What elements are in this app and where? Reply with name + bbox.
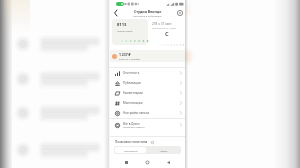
staticText: Отчетность: [123, 71, 140, 75]
button[interactable]: Settings: [175, 8, 184, 17]
button[interactable]: Всё в Дзене: [110, 119, 185, 131]
staticText: Публикации: [123, 81, 141, 85]
staticText: Комментарии: [123, 91, 143, 95]
button[interactable]: 1 237 ₽: [110, 50, 185, 62]
staticText: Лайки: [160, 149, 168, 152]
button[interactable]: Back: [164, 158, 173, 167]
staticText: Студия Вконце: [134, 9, 162, 14]
staticText: Просмотры: [124, 149, 138, 152]
button[interactable]: Просмотры: [115, 147, 146, 153]
staticText: 8113: [117, 22, 127, 28]
button[interactable]: 8113: [112, 19, 148, 45]
button[interactable]: Комментарии: [110, 88, 185, 98]
staticText: С: [165, 30, 169, 38]
staticText: 1 237 ₽: [119, 52, 131, 57]
button[interactable]: 278 ч 37 мин: [151, 19, 184, 45]
staticText: 278 ч 37 мин: [152, 22, 172, 26]
staticText: подписка и сервисы: [123, 126, 145, 129]
button[interactable]: Публикации: [110, 78, 185, 88]
button[interactable]: Back: [111, 8, 120, 17]
button[interactable]: Отчетность: [110, 68, 185, 78]
staticText: Всё в Дзене: [123, 122, 140, 126]
staticText: заказ на 5 октября: [119, 57, 141, 60]
button[interactable]: Лайки: [147, 146, 181, 154]
staticText: Монетизация: [123, 101, 143, 105]
button[interactable]: Recents: [122, 158, 131, 167]
staticText: Настройки канала: [123, 111, 150, 115]
button[interactable]: Настройки канала: [110, 108, 185, 118]
staticText: просмотров за 7 дней: [152, 27, 177, 30]
staticText: Настройки и публикации: [133, 14, 162, 17]
button[interactable]: Info: [150, 140, 154, 144]
staticText: подписчиков: [117, 29, 133, 32]
button[interactable]: Home: [143, 158, 152, 167]
staticText: Почасовая статистика: [115, 140, 148, 144]
button[interactable]: Монетизация: [110, 98, 185, 108]
